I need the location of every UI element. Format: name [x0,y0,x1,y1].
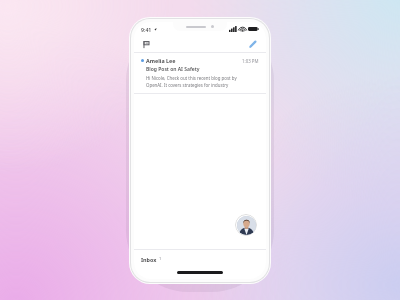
button[interactable]: Compose [247,38,259,50]
button[interactable]: Labels [141,39,152,50]
staticText: 1:03 PM [242,58,259,64]
staticText: OpenAI. It covers strategies for industr… [146,82,229,88]
staticText: 9:41 [141,26,152,33]
staticText: 1 [159,256,162,262]
button[interactable]: Amelia Lee [134,53,266,93]
staticText: Blog Post on AI Safety [146,66,200,73]
staticText: Amelia Lee [146,57,176,64]
button[interactable]: Inbox [134,250,266,268]
staticText: Inbox [141,256,157,263]
button[interactable]: Contact avatar [235,214,257,236]
staticText: Hi Nicole, Check out this recent blog po… [146,75,237,81]
